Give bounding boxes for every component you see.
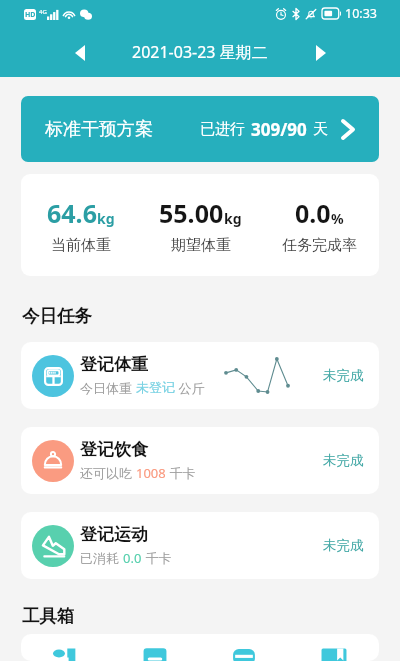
button[interactable]: 登记饮食 (21, 427, 379, 494)
button[interactable]: 登记体重 (21, 342, 379, 409)
staticText: 登记体重 (80, 354, 148, 375)
button[interactable]: Band (199, 647, 289, 661)
staticText: % (331, 209, 344, 228)
staticText: 已进行 (200, 120, 245, 139)
staticText: 登记运动 (80, 524, 148, 545)
button[interactable]: 标准干预方案 (21, 96, 379, 162)
staticText: 千卡 (142, 549, 172, 567)
staticText: 2021-03-23 星期二 (132, 41, 268, 63)
staticText: 公斤 (175, 379, 205, 397)
staticText: 4G (39, 8, 47, 16)
button[interactable]: Scale (110, 647, 199, 661)
staticText: kg (97, 209, 115, 228)
staticText: 期望体重 (171, 236, 231, 255)
staticText: 1008 (136, 464, 166, 482)
staticText: 今日体重 (80, 379, 136, 397)
staticText: 未完成 (323, 537, 364, 554)
staticText: 天 (313, 120, 328, 139)
staticText: 10:33 (345, 5, 377, 22)
staticText: 还可以吃 (80, 464, 136, 482)
button[interactable]: Articles (289, 647, 379, 661)
staticText: 未完成 (323, 367, 364, 384)
staticText: 309/90 (251, 118, 307, 141)
staticText: 55.00 (159, 196, 224, 230)
staticText: kg (224, 209, 242, 228)
staticText: 今日任务 (22, 305, 92, 327)
button[interactable]: 登记运动 (21, 512, 379, 579)
staticText: 未登记 (136, 379, 175, 395)
staticText: 登记饮食 (80, 439, 148, 460)
staticText: 0.0 (123, 549, 142, 567)
button[interactable]: Next day (303, 35, 338, 70)
staticText: 千卡 (166, 464, 196, 482)
staticText: 当前体重 (51, 236, 111, 255)
staticText: 工具箱 (22, 605, 75, 627)
staticText: 标准干预方案 (45, 118, 153, 141)
button[interactable]: Previous day (62, 35, 97, 70)
staticText: 0.0 (295, 196, 331, 230)
staticText: HD (25, 10, 36, 20)
staticText: 已消耗 (80, 549, 123, 567)
staticText: 64.6 (47, 196, 97, 230)
staticText: 任务完成率 (282, 236, 357, 255)
button[interactable]: Body fat (21, 647, 110, 661)
staticText: 未完成 (323, 452, 364, 469)
